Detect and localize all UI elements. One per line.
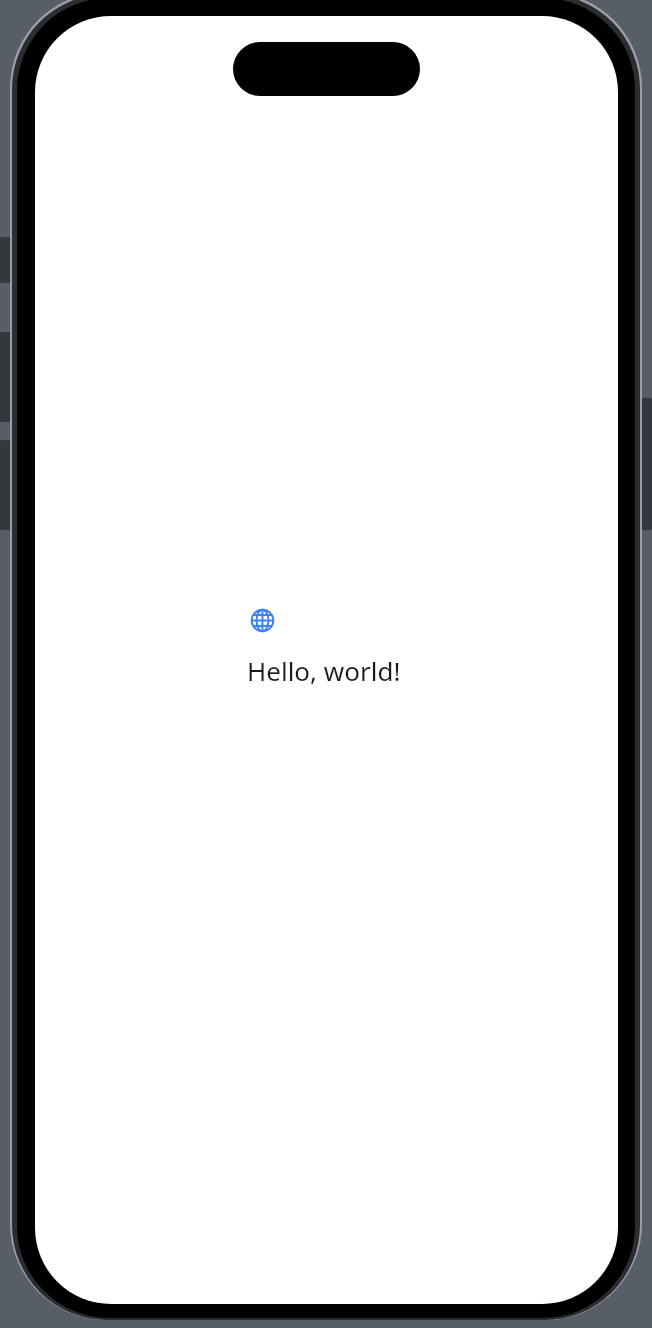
staticText: Hello, world!	[247, 653, 401, 688]
button[interactable]: Globe	[247, 605, 277, 635]
